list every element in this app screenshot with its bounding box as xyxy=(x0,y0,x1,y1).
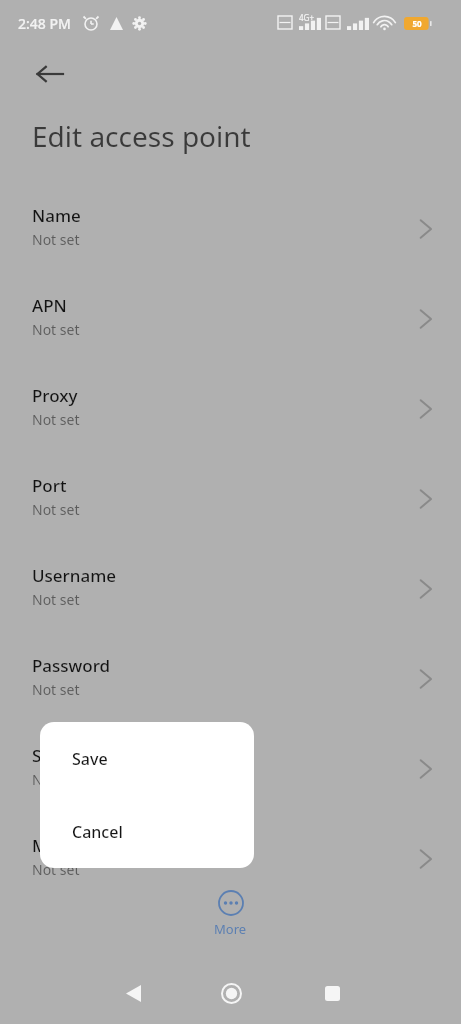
button[interactable]: Server xyxy=(0,736,461,826)
staticText: Port xyxy=(32,474,67,497)
staticText: 2:48 PM xyxy=(18,14,71,33)
staticText: Server xyxy=(32,744,85,767)
button[interactable]: More xyxy=(214,890,247,938)
staticText: Not set xyxy=(32,320,80,339)
staticText: Not set xyxy=(32,230,80,249)
button[interactable]: Back xyxy=(26,50,74,98)
staticText: More xyxy=(214,920,247,938)
button[interactable]: Username xyxy=(0,556,461,646)
staticText: APN xyxy=(32,294,67,317)
staticText: 50 xyxy=(412,18,422,29)
button[interactable]: Proxy xyxy=(0,376,461,466)
button[interactable]: Cancel xyxy=(40,795,254,868)
staticText: Not set xyxy=(32,770,80,789)
button[interactable]: Password xyxy=(0,646,461,736)
button[interactable]: APN xyxy=(0,286,461,376)
staticText: Not set xyxy=(32,680,80,699)
button[interactable]: Name xyxy=(0,196,461,286)
staticText: Not set xyxy=(32,590,80,609)
button[interactable]: Port xyxy=(0,466,461,556)
staticText: Save xyxy=(72,748,108,770)
staticText: Username xyxy=(32,564,116,587)
button[interactable]: Save xyxy=(40,722,254,795)
staticText: Edit access point xyxy=(32,117,251,155)
button[interactable]: Recents xyxy=(308,969,356,1017)
button[interactable]: Home xyxy=(207,969,255,1017)
staticText: Not set xyxy=(32,860,80,879)
staticText: Password xyxy=(32,654,111,677)
staticText: 4G+ xyxy=(299,12,314,23)
button[interactable]: Back xyxy=(109,969,157,1017)
staticText: Not set xyxy=(32,410,80,429)
staticText: Proxy xyxy=(32,384,78,407)
staticText: Not set xyxy=(32,500,80,519)
staticText: Name xyxy=(32,204,81,227)
staticText: MMSC xyxy=(32,834,84,857)
staticText: Cancel xyxy=(72,821,123,843)
button[interactable]: MMSC xyxy=(0,826,461,916)
